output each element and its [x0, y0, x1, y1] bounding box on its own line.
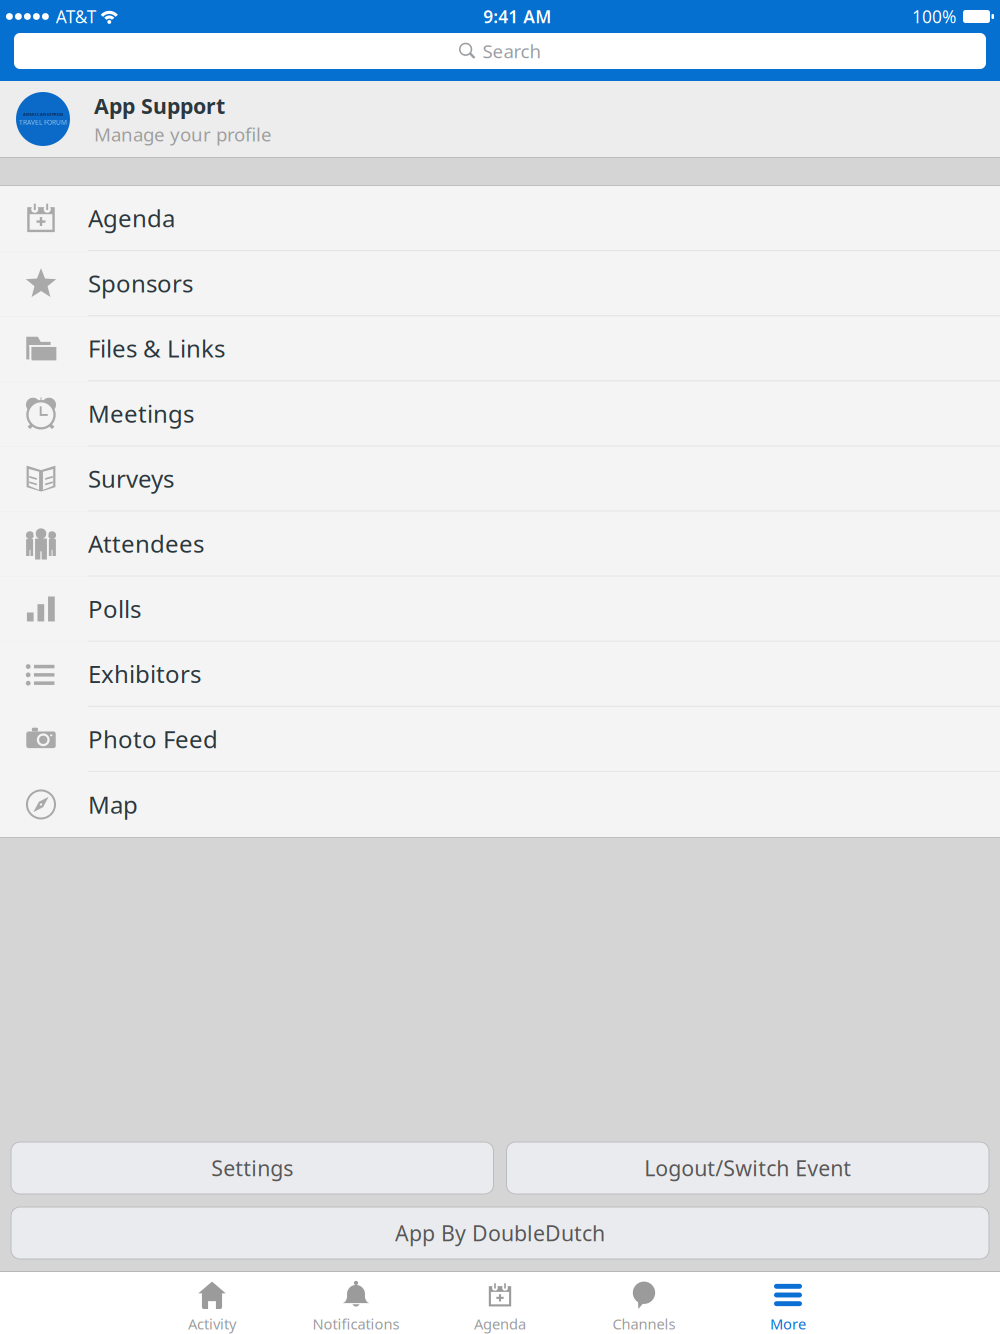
button[interactable]: Logout/Switch Event — [506, 1142, 989, 1194]
staticText: Agenda — [474, 1314, 526, 1333]
button[interactable]: Polls — [0, 577, 1000, 642]
button[interactable]: Activity — [140, 1272, 284, 1334]
staticText: Settings — [211, 1154, 293, 1182]
button[interactable]: Agenda — [0, 186, 1000, 251]
staticText: AT&T — [56, 5, 97, 28]
staticText: More — [770, 1314, 806, 1333]
staticText: App Support — [94, 91, 225, 120]
staticText: Files & Links — [88, 332, 225, 364]
button[interactable]: Exhibitors — [0, 642, 1000, 707]
staticText: Notifications — [312, 1314, 399, 1333]
staticText: Logout/Switch Event — [644, 1154, 851, 1182]
button[interactable]: Photo Feed — [0, 707, 1000, 772]
staticText: Activity — [188, 1314, 236, 1333]
staticText: Attendees — [88, 528, 204, 559]
staticText: Polls — [88, 593, 141, 625]
staticText: Map — [88, 788, 138, 820]
button[interactable]: Notifications — [284, 1272, 428, 1334]
button[interactable]: Files & Links — [0, 316, 1000, 381]
staticText: Manage your profile — [94, 122, 272, 147]
staticText: Sponsors — [88, 267, 193, 299]
staticText: Search — [482, 39, 541, 63]
staticText: Channels — [612, 1314, 675, 1333]
staticText: Meetings — [88, 397, 194, 429]
button[interactable]: Settings — [11, 1142, 493, 1194]
button[interactable]: Agenda — [428, 1272, 572, 1334]
staticText: AMERICAN EXPRESS — [23, 111, 63, 117]
staticText: Exhibitors — [88, 658, 201, 690]
staticText: TRAVEL FORUM — [19, 118, 67, 127]
button[interactable]: More — [716, 1272, 860, 1334]
button[interactable]: Attendees — [0, 511, 1000, 577]
button[interactable]: Channels — [572, 1272, 716, 1334]
button[interactable]: Sponsors — [0, 251, 1000, 316]
staticText: Surveys — [88, 462, 174, 494]
button[interactable]: AMERICAN EXPRESS — [0, 81, 1000, 157]
button[interactable]: Surveys — [0, 446, 1000, 511]
staticText: 9:41 AM — [483, 5, 551, 28]
button[interactable]: Map — [0, 772, 1000, 837]
button[interactable]: Meetings — [0, 381, 1000, 446]
button[interactable]: App By DoubleDutch — [11, 1207, 989, 1259]
staticText: Photo Feed — [88, 723, 218, 755]
staticText: 100% — [912, 5, 956, 28]
staticText: App By DoubleDutch — [395, 1219, 605, 1247]
staticText: Agenda — [88, 202, 175, 234]
